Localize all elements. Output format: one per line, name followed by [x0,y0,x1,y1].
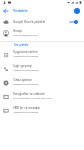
button[interactable]: Hesap [0,27,84,38]
button[interactable]: Çağrı geçmişi [0,61,84,75]
staticText: Son yedekleme: 24 Mayıs 2022 tarih [13,97,52,100]
staticText: Yedekleme tamamlandı [13,111,39,114]
button[interactable]: Help [71,5,82,16]
staticText: Yedekleme tamamlandı [13,69,39,72]
button[interactable]: Uygulama verileri [0,47,84,61]
staticText: Yedekleme tamamlandı [13,83,39,86]
staticText: Yedekleme tamamlandı [13,55,39,58]
staticText: Söz yedekle [14,43,29,47]
button[interactable]: SMS'ler ve mesajlar [0,103,84,117]
staticText: SMS'ler ve mesajlar [13,106,41,110]
button[interactable]: Cihaz ayarları [0,75,84,89]
staticText: Fotoğraflar ve videolar [13,92,45,96]
button[interactable]: Google Drive'a yedekle [0,16,84,27]
staticText: Cihaz ayarları [13,78,33,82]
staticText: Google Drive'a yedekle [13,20,46,24]
staticText: Hesap [13,29,22,33]
staticText: mhmtbngl@gmail.com [13,34,38,37]
button[interactable]: Fotoğraflar ve videolar [0,89,84,103]
staticText: Çağrı geçmişi [13,64,32,68]
staticText: Yedekle [13,8,28,13]
staticText: Uygulama verileri [13,50,38,54]
button[interactable]: Back [0,5,11,16]
